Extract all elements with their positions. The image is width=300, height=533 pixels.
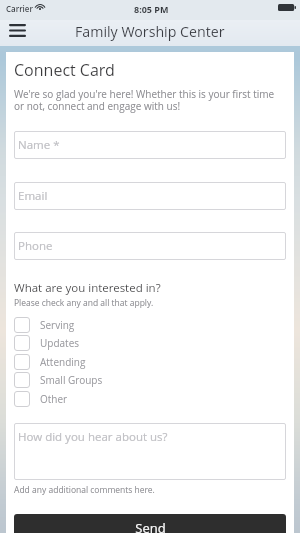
button[interactable]: Send [14, 514, 286, 533]
staticText: Attending [40, 355, 86, 369]
staticText: Add any additional comments here. [14, 484, 155, 496]
staticText: Other [40, 392, 68, 406]
button[interactable]: Email [14, 182, 286, 210]
staticText: Phone [18, 238, 53, 254]
staticText: What are you interested in? [14, 280, 161, 296]
staticText: How did you hear about us? [18, 429, 168, 445]
staticText: Send [135, 519, 166, 533]
button[interactable]: Other [14, 391, 154, 407]
staticText: Carrier [6, 3, 33, 14]
button[interactable]: Small Groups [14, 372, 154, 388]
button[interactable]: Name * [14, 131, 286, 159]
button[interactable]: Updates [14, 335, 154, 351]
button[interactable]: Attending [14, 354, 154, 370]
staticText: Updates [40, 336, 80, 350]
staticText: Family Worship Center [75, 22, 225, 41]
staticText: Email [18, 188, 48, 204]
staticText: Small Groups [40, 373, 103, 387]
staticText: Connect Card [14, 59, 115, 81]
button[interactable]: How did you hear about us? [14, 423, 286, 480]
staticText: Name * [18, 137, 60, 153]
staticText: 8:05 PM [134, 3, 169, 15]
button[interactable]: Serving [14, 317, 154, 333]
staticText: Please check any and all that apply. [14, 297, 154, 309]
staticText: We're so glad you're here! Whether this … [14, 87, 286, 113]
staticText: Serving [40, 318, 75, 332]
button[interactable]: Phone [14, 232, 286, 260]
button[interactable]: Open navigation menu [0, 20, 36, 46]
